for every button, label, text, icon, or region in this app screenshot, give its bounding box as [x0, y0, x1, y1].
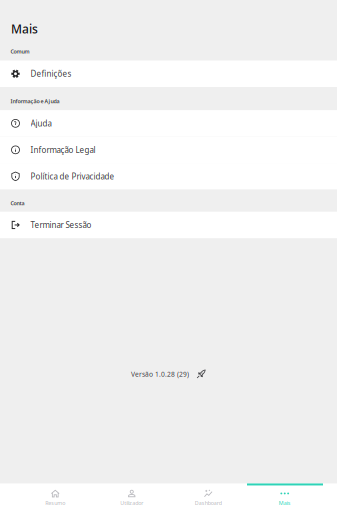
button[interactable]: Dashboard [170, 483, 246, 512]
staticText: Informação e Ajuda [10, 97, 59, 105]
staticText: Utilizador [120, 499, 143, 507]
staticText: Mais [11, 21, 38, 37]
staticText: Comum [10, 48, 29, 55]
button[interactable]: Mais [246, 483, 323, 512]
button[interactable]: Ajuda [0, 110, 337, 137]
button[interactable]: Terminar Sessão [0, 212, 337, 238]
staticText: Política de Privacidade [30, 171, 114, 182]
button[interactable]: Política de Privacidade [0, 163, 337, 190]
staticText: Informação Legal [30, 144, 95, 155]
button[interactable]: Resumo [17, 483, 93, 512]
button[interactable]: Utilizador [93, 483, 170, 512]
staticText: Versão 1.0.28 (29) [131, 370, 189, 379]
staticText: Resumo [45, 499, 65, 507]
staticText: Conta [10, 200, 24, 207]
staticText: Mais [279, 499, 291, 507]
staticText: Ajuda [30, 118, 51, 129]
button[interactable]: Informação Legal [0, 137, 337, 163]
button[interactable]: Definições [0, 60, 337, 87]
staticText: Dashboard [195, 499, 222, 507]
staticText: Terminar Sessão [30, 220, 91, 230]
staticText: Definições [30, 68, 71, 79]
